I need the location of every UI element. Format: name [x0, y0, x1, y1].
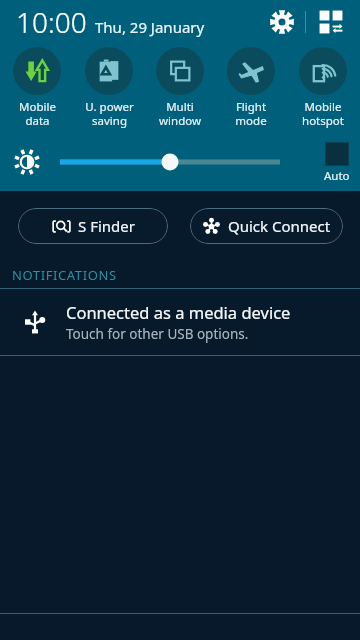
- button[interactable]: Flight mode: [217, 44, 285, 128]
- staticText: Flight mode: [235, 99, 267, 128]
- button[interactable]: Multi window: [146, 44, 214, 128]
- button[interactable]: Edit quick settings: [314, 5, 348, 39]
- staticText: Multi window: [159, 99, 201, 128]
- button[interactable]: Connected as a media device: [0, 289, 360, 355]
- staticText: Touch for other USB options.: [66, 325, 249, 343]
- button[interactable]: Mobile data: [3, 44, 71, 128]
- staticText: Mobile hotspot: [302, 99, 344, 128]
- button[interactable]: U. power saving: [75, 44, 143, 128]
- staticText: Thu, 29 January: [95, 17, 205, 37]
- staticText: S Finder: [78, 216, 135, 236]
- button[interactable]: S Finder: [18, 208, 168, 244]
- staticText: Quick Connect: [228, 216, 331, 236]
- button[interactable]: Quick Connect: [190, 208, 343, 244]
- button[interactable]: Brightness: [60, 150, 280, 174]
- staticText: Connected as a media device: [66, 301, 291, 323]
- staticText: U. power saving: [85, 99, 134, 128]
- staticText: Mobile data: [19, 99, 56, 128]
- staticText: 10:00: [16, 3, 87, 41]
- staticText: Auto: [324, 168, 350, 184]
- button[interactable]: Auto: [324, 142, 350, 184]
- button[interactable]: Mobile hotspot: [289, 44, 357, 128]
- button[interactable]: Settings: [265, 5, 299, 39]
- staticText: NOTIFICATIONS: [12, 266, 117, 284]
